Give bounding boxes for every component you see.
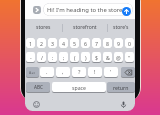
staticText: :	[52, 54, 54, 61]
button[interactable]: #+=	[26, 67, 39, 77]
button[interactable]: &	[103, 52, 112, 62]
button[interactable]: 0	[125, 38, 134, 48]
button[interactable]: 1	[26, 38, 35, 48]
staticText: #+=	[29, 70, 36, 75]
staticText: 6	[84, 40, 87, 47]
staticText: 7	[95, 40, 98, 47]
staticText: return	[113, 84, 129, 91]
button[interactable]: /	[37, 52, 46, 62]
button[interactable]: store's	[107, 21, 135, 34]
staticText: 9	[117, 40, 120, 47]
button[interactable]: ABC	[26, 82, 50, 92]
button[interactable]: 6	[81, 38, 90, 48]
button[interactable]: 9	[114, 38, 123, 48]
staticText: $	[95, 54, 98, 61]
staticText: &	[106, 54, 110, 61]
button[interactable]: return	[107, 82, 135, 92]
staticText: @	[116, 54, 121, 61]
button[interactable]: !	[88, 67, 102, 77]
button[interactable]: (	[70, 52, 79, 62]
staticText: ;	[63, 54, 65, 61]
button[interactable]	[33, 6, 41, 14]
button[interactable]: space	[52, 82, 106, 92]
staticText: "	[128, 54, 131, 61]
button[interactable]: ,	[56, 67, 70, 77]
button[interactable]: stores	[25, 21, 62, 34]
staticText: 3	[51, 40, 54, 47]
button[interactable]: 2	[37, 38, 46, 48]
staticText: ?	[78, 68, 81, 76]
button[interactable]	[33, 101, 40, 108]
staticText: 0	[128, 40, 131, 47]
staticText: /	[41, 54, 43, 61]
button[interactable]: -	[26, 52, 35, 62]
staticText: 2	[40, 40, 43, 47]
staticText: 5	[73, 40, 76, 47]
button[interactable]: '	[104, 67, 118, 77]
staticText: -	[30, 54, 32, 61]
button[interactable]: :	[48, 52, 57, 62]
button[interactable]: 5	[70, 38, 79, 48]
staticText: 4	[62, 40, 65, 47]
button[interactable]	[122, 7, 131, 16]
staticText: space	[72, 84, 87, 91]
staticText: )	[85, 54, 87, 61]
button[interactable]: 3	[48, 38, 57, 48]
button[interactable]	[121, 67, 135, 77]
staticText: ABC	[34, 84, 43, 90]
staticText: stores	[36, 24, 51, 31]
staticText: '	[110, 68, 112, 76]
button[interactable]: 8	[103, 38, 112, 48]
staticText: store's	[113, 24, 129, 31]
button[interactable]: @	[114, 52, 123, 62]
staticText: 1	[29, 40, 32, 47]
button[interactable]: "	[125, 52, 134, 62]
button[interactable]: )	[81, 52, 90, 62]
staticText: (	[74, 54, 76, 61]
staticText: ,	[62, 68, 64, 76]
button[interactable]: ;	[59, 52, 68, 62]
button[interactable]: 7	[92, 38, 101, 48]
button[interactable]: $	[92, 52, 101, 62]
staticText: .	[46, 68, 48, 76]
button[interactable]: ?	[72, 67, 86, 77]
button[interactable]: storefront	[62, 21, 108, 34]
button[interactable]	[120, 101, 127, 109]
staticText: storefront	[73, 24, 97, 31]
staticText: 8	[106, 40, 109, 47]
button[interactable]: .	[40, 67, 54, 77]
staticText: Hi! I'm heading to the store	[47, 6, 123, 14]
button[interactable]: Hi! I'm heading to the store	[43, 3, 133, 16]
button[interactable]: 4	[59, 38, 68, 48]
staticText: !	[94, 68, 96, 76]
